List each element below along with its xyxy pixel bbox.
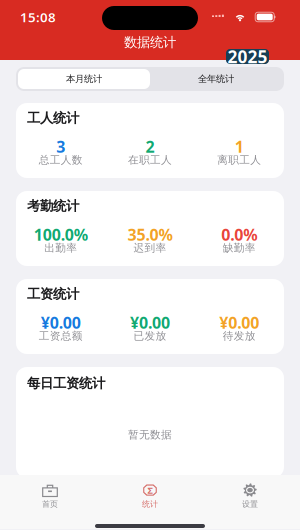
staticText: 待发放 xyxy=(223,329,256,342)
staticText: 工人统计 xyxy=(27,110,79,126)
button[interactable]: 全年统计 xyxy=(150,69,282,89)
staticText: 工资统计 xyxy=(27,286,79,302)
staticText: 2 xyxy=(145,136,154,157)
staticText: 迟到率 xyxy=(133,241,166,254)
staticText: 全年统计 xyxy=(198,73,234,85)
staticText: 离职工人 xyxy=(217,153,261,166)
staticText: 35.0% xyxy=(127,224,172,245)
staticText: 统计 xyxy=(142,499,158,509)
button[interactable]: 设置 xyxy=(200,476,300,516)
staticText: 100.0% xyxy=(34,224,88,245)
staticText: ¥0.00 xyxy=(219,312,259,333)
staticText: 数据统计 xyxy=(124,34,176,50)
staticText: 15:08 xyxy=(20,8,56,26)
staticText: 出勤率 xyxy=(44,241,77,254)
staticText: 3 xyxy=(56,136,65,157)
staticText: 1 xyxy=(235,136,244,157)
staticText: 设置 xyxy=(242,499,258,509)
staticText: 在职工人 xyxy=(128,153,172,166)
staticText: 本月统计 xyxy=(66,73,102,85)
staticText: 总工人数 xyxy=(39,153,83,166)
button[interactable]: 本月统计 xyxy=(18,69,150,89)
staticText: 考勤统计 xyxy=(27,198,79,214)
staticText: 工资总额 xyxy=(39,329,83,342)
button[interactable]: Σ xyxy=(100,476,200,516)
staticText: 2025 xyxy=(227,45,267,68)
staticText: ¥0.00 xyxy=(130,312,170,333)
staticText: 已发放 xyxy=(133,329,166,342)
button[interactable]: 首页 xyxy=(0,476,100,516)
staticText: 每日工资统计 xyxy=(27,375,105,391)
staticText: Σ xyxy=(147,484,152,496)
staticText: 缺勤率 xyxy=(223,241,256,254)
staticText: 暂无数据 xyxy=(128,428,172,441)
staticText: 首页 xyxy=(42,499,58,509)
staticText: ¥0.00 xyxy=(41,312,81,333)
staticText: 0.0% xyxy=(221,224,257,245)
